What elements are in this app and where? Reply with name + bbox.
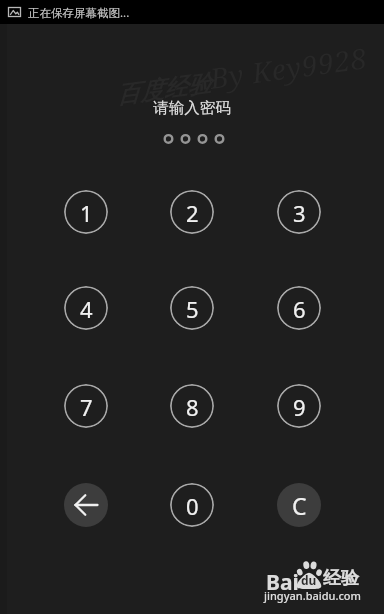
staticText: 百度经验 (114, 68, 213, 111)
staticText: 4 (80, 294, 93, 324)
staticText: 1 (80, 198, 93, 228)
staticText: Bai (266, 568, 299, 597)
button[interactable]: 1 (64, 190, 108, 234)
staticText: 0 (186, 491, 199, 521)
staticText: 8 (186, 392, 199, 422)
staticText: 2 (186, 198, 199, 228)
staticText: 9 (293, 392, 306, 422)
button[interactable]: 8 (170, 384, 214, 428)
staticText: du (301, 572, 317, 588)
staticText: jingyan.baidu.com (264, 588, 361, 603)
button[interactable]: 5 (170, 286, 214, 330)
button[interactable]: 7 (64, 384, 108, 428)
button[interactable]: 3 (277, 190, 321, 234)
button[interactable]: 2 (170, 190, 214, 234)
staticText: 3 (293, 198, 306, 228)
staticText: 7 (80, 392, 93, 422)
staticText: 正在保存屏幕截图... (28, 5, 130, 21)
staticText: 6 (293, 294, 306, 324)
button[interactable]: 6 (277, 286, 321, 330)
button[interactable]: 4 (64, 286, 108, 330)
staticText: 经验 (323, 567, 359, 590)
staticText: 5 (186, 294, 199, 324)
button[interactable]: 0 (170, 483, 214, 527)
staticText: 请输入密码 (153, 98, 231, 118)
button[interactable]: 9 (277, 384, 321, 428)
button[interactable]: Clear (277, 483, 321, 527)
staticText: C (292, 490, 307, 521)
button[interactable]: Back (64, 483, 108, 527)
